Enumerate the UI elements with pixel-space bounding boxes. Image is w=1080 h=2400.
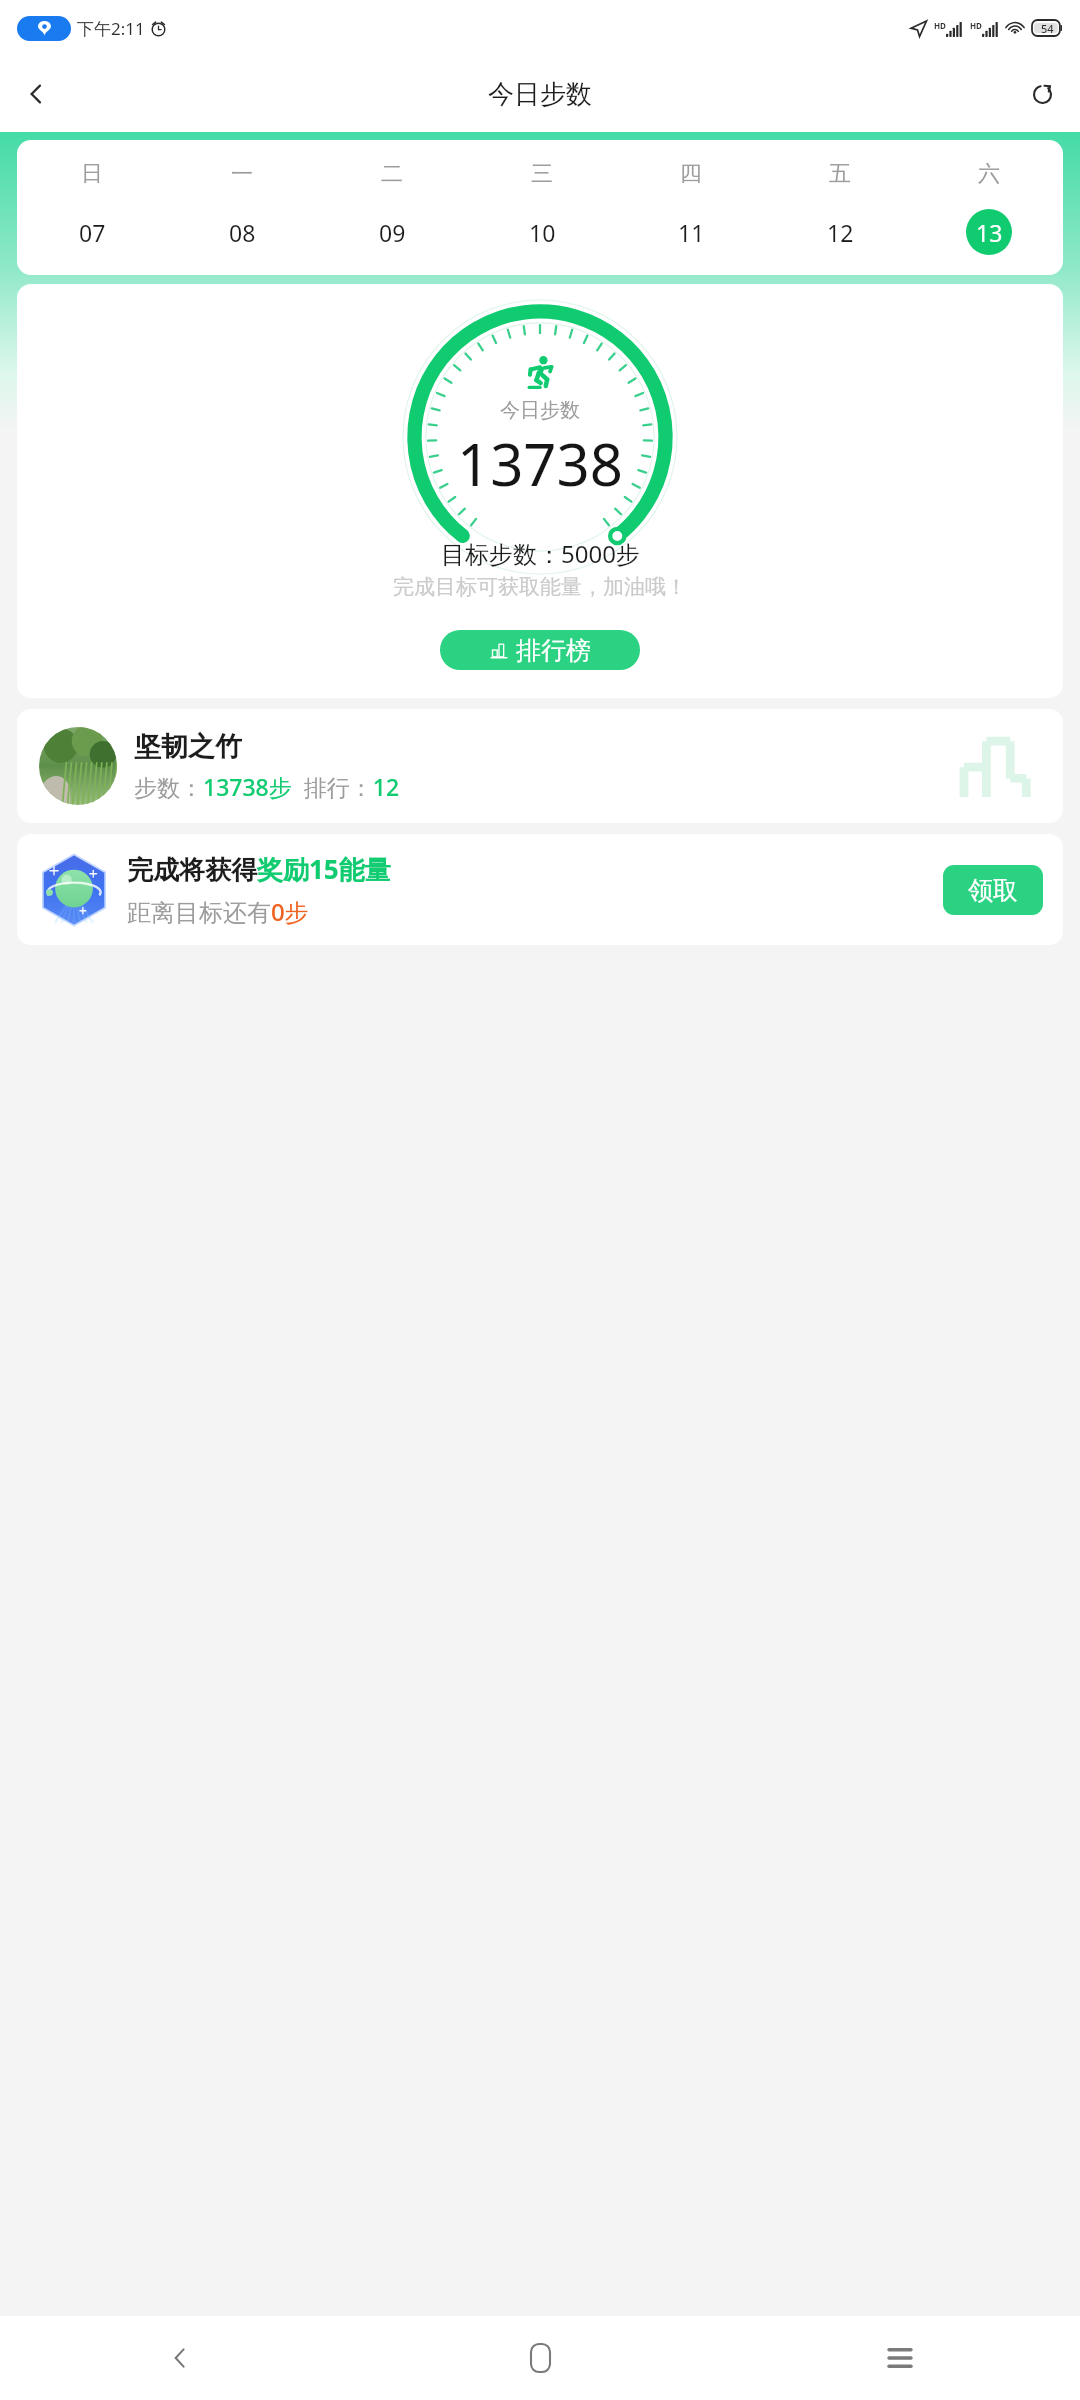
button[interactable]: 一 [167, 160, 317, 255]
staticText: 完成将获得奖励15能量 [127, 851, 391, 887]
staticText: 二 [381, 160, 403, 188]
staticText: 13738 [457, 424, 623, 503]
staticText: 三 [531, 160, 553, 188]
staticText: 四 [680, 160, 702, 188]
button[interactable]: 坚韧之竹 [17, 709, 1063, 823]
staticText: 13 [976, 217, 1003, 248]
staticText: 六 [978, 160, 1000, 188]
staticText: 10 [529, 217, 556, 248]
staticText: 12 [827, 217, 854, 248]
staticText: 下午2:11 [77, 17, 145, 40]
button[interactable]: 返回 [0, 2316, 360, 2400]
button[interactable]: 主页 [360, 2316, 720, 2400]
button[interactable]: 四 [616, 160, 765, 255]
button[interactable]: 五 [765, 160, 914, 255]
staticText: 今日步数 [488, 78, 592, 111]
staticText: 领取 [968, 875, 1018, 906]
staticText: 54 [1041, 21, 1054, 36]
button[interactable]: 排行榜 [440, 630, 640, 670]
staticText: HD [970, 20, 982, 31]
staticText: HD [934, 20, 946, 31]
button[interactable]: 领取 [943, 865, 1043, 915]
staticText: 09 [379, 217, 406, 248]
button[interactable]: 最近任务 [720, 2316, 1080, 2400]
staticText: 步数：13738步 排行：12 [134, 771, 400, 802]
staticText: 一 [231, 160, 253, 188]
staticText: 日 [81, 160, 103, 188]
staticText: 08 [229, 217, 256, 248]
staticText: 目标步数：5000步 [441, 537, 640, 570]
staticText: 11 [678, 217, 705, 248]
button[interactable]: 六 [914, 160, 1063, 255]
staticText: 五 [829, 160, 851, 188]
staticText: 坚韧之竹 [134, 730, 242, 764]
staticText: 距离目标还有0步 [127, 895, 309, 928]
staticText: 完成目标可获取能量，加油哦！ [393, 574, 687, 600]
button[interactable]: 三 [467, 160, 616, 255]
staticText: 07 [79, 217, 106, 248]
button[interactable]: 日 [17, 160, 167, 255]
button[interactable]: 二 [317, 160, 467, 255]
staticText: 今日步数 [500, 398, 580, 423]
button[interactable]: 返回 [8, 66, 64, 122]
button[interactable]: 分享 [1014, 66, 1070, 122]
staticText: 排行榜 [516, 635, 591, 666]
